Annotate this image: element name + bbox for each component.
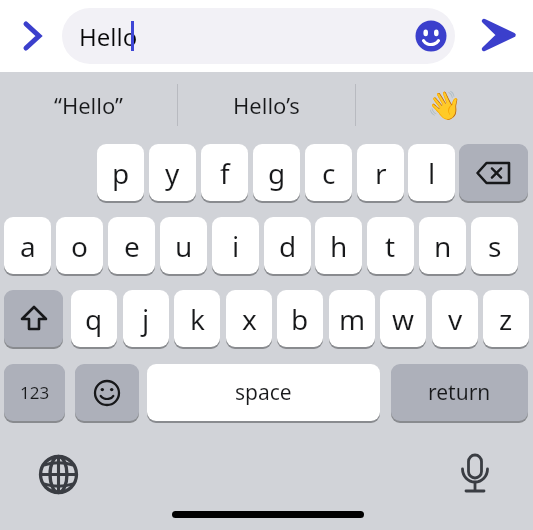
staticText: z (499, 300, 513, 338)
button[interactable]: z (483, 290, 529, 347)
button[interactable] (75, 364, 139, 421)
staticText: k (190, 300, 205, 338)
button[interactable]: f (201, 144, 248, 201)
staticText: l (428, 154, 436, 192)
staticText: r (375, 154, 387, 192)
staticText: o (71, 227, 88, 265)
button[interactable] (455, 450, 495, 496)
staticText: w (392, 300, 415, 338)
button[interactable]: m (329, 290, 375, 347)
button[interactable]: “Hello” (0, 72, 177, 138)
button[interactable]: d (264, 217, 311, 274)
staticText: f (220, 154, 230, 192)
button[interactable]: c (305, 144, 352, 201)
staticText: “Hello” (54, 90, 123, 120)
button[interactable]: a (4, 217, 51, 274)
staticText: m (339, 300, 366, 338)
button[interactable]: s (471, 217, 518, 274)
button[interactable] (38, 454, 79, 495)
staticText: a (20, 227, 36, 265)
staticText: j (142, 300, 150, 338)
button[interactable]: space (147, 364, 380, 421)
button[interactable]: e (108, 217, 155, 274)
staticText: y (165, 154, 180, 192)
button[interactable]: g (253, 144, 300, 201)
staticText: 👋 (427, 89, 462, 122)
button[interactable]: v (432, 290, 478, 347)
button[interactable]: Hello’s (178, 72, 355, 138)
button[interactable]: t (367, 217, 414, 274)
staticText: u (175, 227, 193, 265)
staticText: s (488, 227, 502, 265)
button[interactable]: 👋 (356, 72, 533, 138)
button[interactable] (459, 144, 528, 201)
staticText: d (279, 227, 297, 265)
button[interactable]: q (71, 290, 117, 347)
button[interactable]: w (380, 290, 426, 347)
button[interactable]: return (391, 364, 528, 421)
button[interactable]: n (419, 217, 466, 274)
staticText: e (124, 227, 140, 265)
staticText: v (448, 300, 463, 338)
button[interactable] (4, 290, 63, 347)
button[interactable]: 123 (4, 364, 65, 421)
button[interactable]: l (408, 144, 455, 201)
button[interactable]: o (56, 217, 103, 274)
button[interactable]: Hello (62, 8, 455, 64)
staticText: b (291, 300, 309, 338)
button[interactable] (474, 12, 522, 60)
button[interactable]: j (123, 290, 169, 347)
staticText: Hello (79, 20, 138, 53)
staticText: g (268, 154, 286, 192)
button[interactable]: y (149, 144, 196, 201)
button[interactable] (18, 18, 48, 54)
staticText: q (85, 300, 103, 338)
button[interactable]: p (97, 144, 144, 201)
staticText: n (434, 227, 452, 265)
button[interactable] (415, 20, 447, 52)
staticText: c (322, 154, 336, 192)
button[interactable]: h (315, 217, 362, 274)
staticText: space (235, 378, 292, 407)
staticText: x (242, 300, 257, 338)
button[interactable]: x (226, 290, 272, 347)
staticText: return (428, 378, 491, 407)
staticText: h (330, 227, 348, 265)
staticText: 123 (20, 381, 50, 404)
button[interactable]: i (212, 217, 259, 274)
button[interactable]: b (277, 290, 323, 347)
staticText: i (232, 227, 240, 265)
staticText: p (112, 154, 130, 192)
button[interactable]: u (160, 217, 207, 274)
staticText: Hello’s (233, 90, 300, 120)
button[interactable]: r (357, 144, 404, 201)
staticText: t (385, 227, 396, 265)
button[interactable]: k (174, 290, 220, 347)
